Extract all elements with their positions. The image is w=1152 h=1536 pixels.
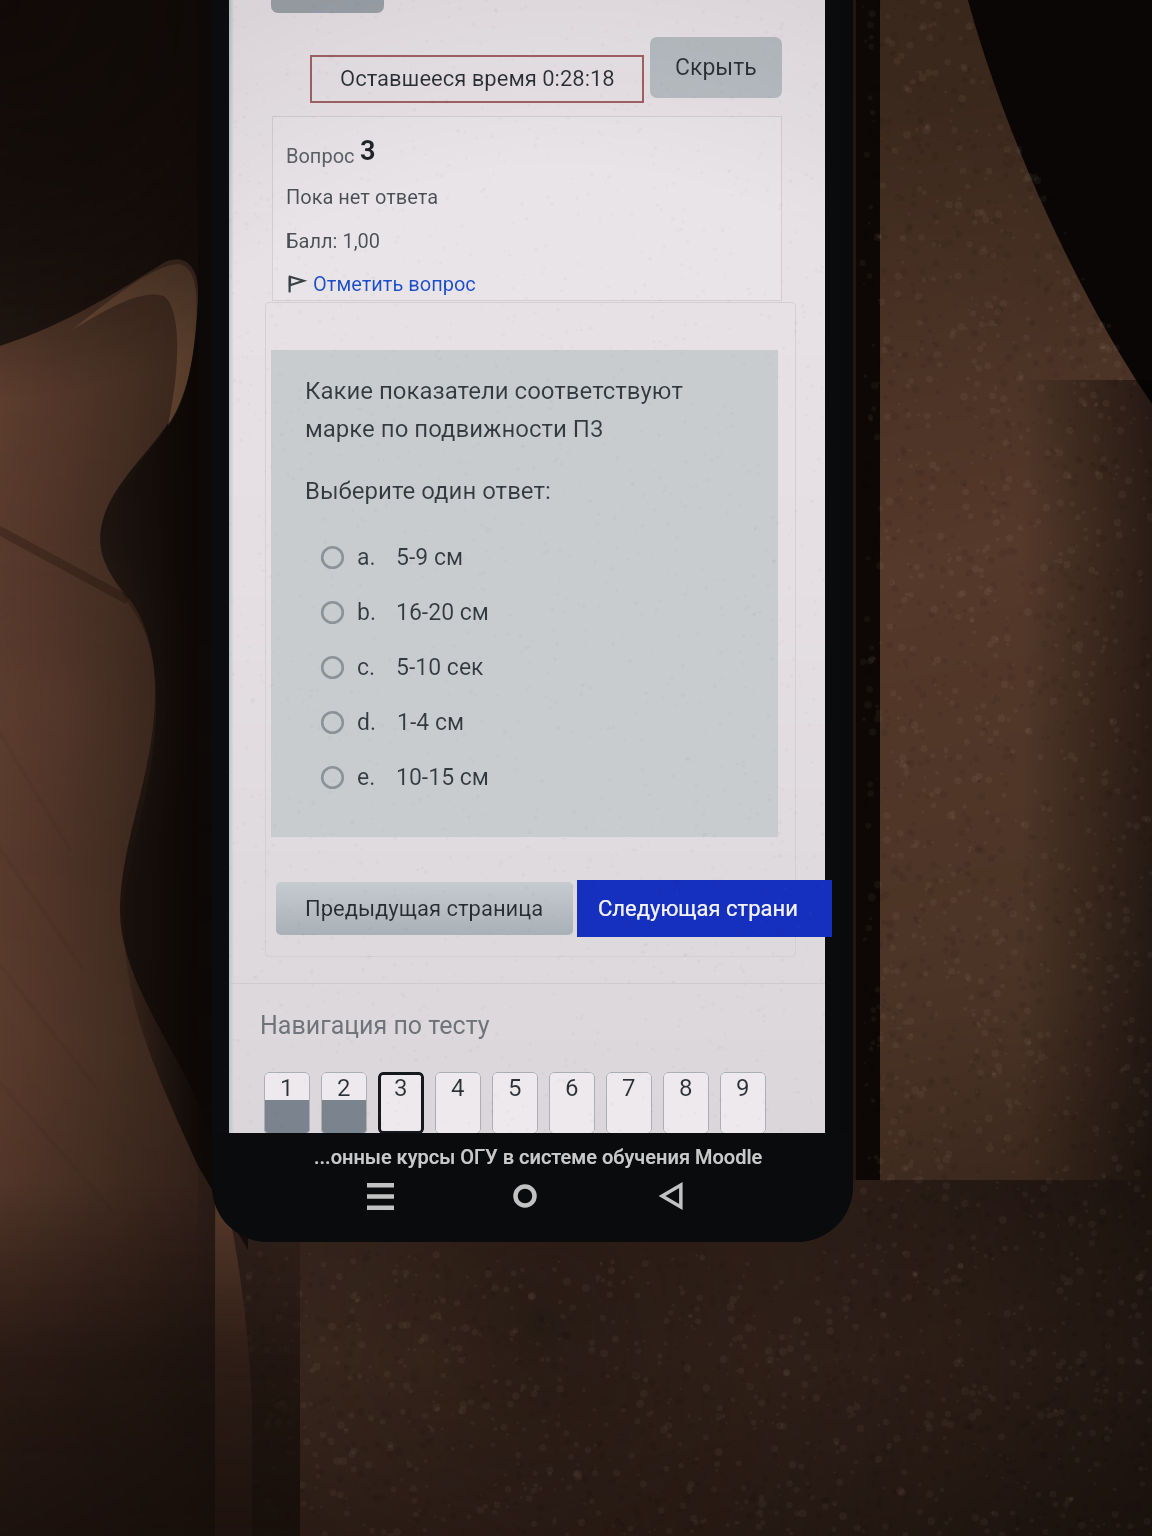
button[interactable]: Home bbox=[500, 1171, 550, 1221]
staticText: 1-4 см bbox=[397, 709, 465, 736]
button[interactable]: 9 bbox=[720, 1072, 766, 1134]
staticText: Оставшееся время 0:28:18 bbox=[340, 66, 615, 92]
staticText: Какие показатели соответствуют bbox=[305, 377, 683, 405]
button[interactable] bbox=[271, 0, 384, 13]
staticText: Следующая страни bbox=[598, 896, 798, 922]
staticText: a. bbox=[357, 544, 376, 571]
button[interactable]: b. bbox=[305, 585, 635, 640]
staticText: 10-15 см bbox=[396, 764, 489, 791]
staticText: Вопрос bbox=[286, 144, 360, 167]
staticText: 9 bbox=[736, 1074, 750, 1102]
staticText: 5 bbox=[508, 1074, 522, 1102]
staticText: Выберите один ответ: bbox=[305, 477, 551, 505]
button[interactable]: 4 bbox=[435, 1072, 481, 1134]
staticText: ...онные курсы ОГУ в системе обучения Mo… bbox=[314, 1145, 763, 1168]
staticText: b. bbox=[357, 599, 376, 626]
staticText: 3 bbox=[360, 135, 376, 167]
button[interactable]: Back bbox=[647, 1171, 697, 1221]
button[interactable]: a. bbox=[305, 530, 635, 585]
staticText: Навигация по тесту bbox=[260, 1011, 490, 1040]
staticText: 7 bbox=[622, 1074, 636, 1102]
staticText: 3 bbox=[394, 1074, 408, 1102]
staticText: 5-10 сек bbox=[396, 654, 484, 681]
button[interactable]: Отметить вопрос bbox=[286, 272, 476, 295]
button[interactable]: 5 bbox=[492, 1072, 538, 1134]
staticText: 5-9 см bbox=[396, 544, 464, 571]
staticText: c. bbox=[357, 654, 376, 681]
staticText: 1 bbox=[280, 1074, 294, 1102]
button[interactable]: 1 bbox=[264, 1072, 310, 1134]
button[interactable]: Recent apps bbox=[355, 1171, 405, 1221]
staticText: Пока нет ответа bbox=[286, 185, 439, 208]
button[interactable]: d. bbox=[305, 695, 635, 750]
button[interactable]: 3 bbox=[378, 1072, 424, 1134]
staticText: 16-20 см bbox=[396, 599, 489, 626]
button[interactable]: c. bbox=[305, 640, 635, 695]
staticText: d. bbox=[357, 709, 377, 736]
button[interactable]: Предыдущая страница bbox=[276, 882, 573, 935]
button[interactable]: 6 bbox=[549, 1072, 595, 1134]
staticText: 4 bbox=[451, 1074, 465, 1102]
button[interactable]: Скрыть bbox=[650, 37, 782, 98]
staticText: 8 bbox=[679, 1074, 693, 1102]
button[interactable]: Следующая страни bbox=[577, 880, 832, 937]
button[interactable]: 8 bbox=[663, 1072, 709, 1134]
button[interactable]: e. bbox=[305, 750, 635, 805]
staticText: Скрыть bbox=[675, 54, 757, 81]
button[interactable]: 2 bbox=[321, 1072, 367, 1134]
button[interactable]: 7 bbox=[606, 1072, 652, 1134]
staticText: Отметить вопрос bbox=[313, 272, 476, 295]
staticText: Балл: 1,00 bbox=[286, 229, 381, 252]
staticText: Предыдущая страница bbox=[305, 896, 544, 922]
staticText: 6 bbox=[565, 1074, 579, 1102]
button[interactable]: Оставшееся время 0:28:18 bbox=[310, 55, 644, 103]
staticText: марке по подвижности П3 bbox=[305, 415, 604, 443]
staticText: 2 bbox=[337, 1074, 351, 1102]
staticText: e. bbox=[357, 764, 376, 791]
